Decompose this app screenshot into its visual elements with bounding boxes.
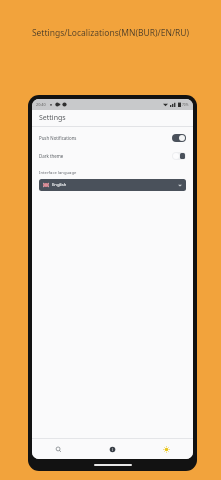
- staticText: Settings: [39, 113, 66, 123]
- staticText: 20:40: [36, 102, 46, 107]
- button[interactable]: Toggle on: [172, 134, 186, 142]
- staticText: Dark theme: [39, 153, 64, 159]
- staticText: 70%: [182, 103, 189, 107]
- button[interactable]: Search: [32, 439, 85, 459]
- staticText: English: [52, 182, 67, 188]
- staticText: Interface language: [39, 170, 77, 176]
- staticText: Push Notifications: [39, 135, 77, 141]
- button[interactable]: Push Notifications: [39, 133, 186, 143]
- button[interactable]: Info: [85, 439, 139, 459]
- button[interactable]: Dark theme: [39, 151, 186, 161]
- staticText: Settings/Localizations(MN(BUR)/EN/RU): [0, 27, 221, 39]
- button[interactable]: English: [39, 179, 186, 191]
- button[interactable]: Toggle off: [172, 152, 186, 160]
- button[interactable]: Theme: [139, 439, 193, 459]
